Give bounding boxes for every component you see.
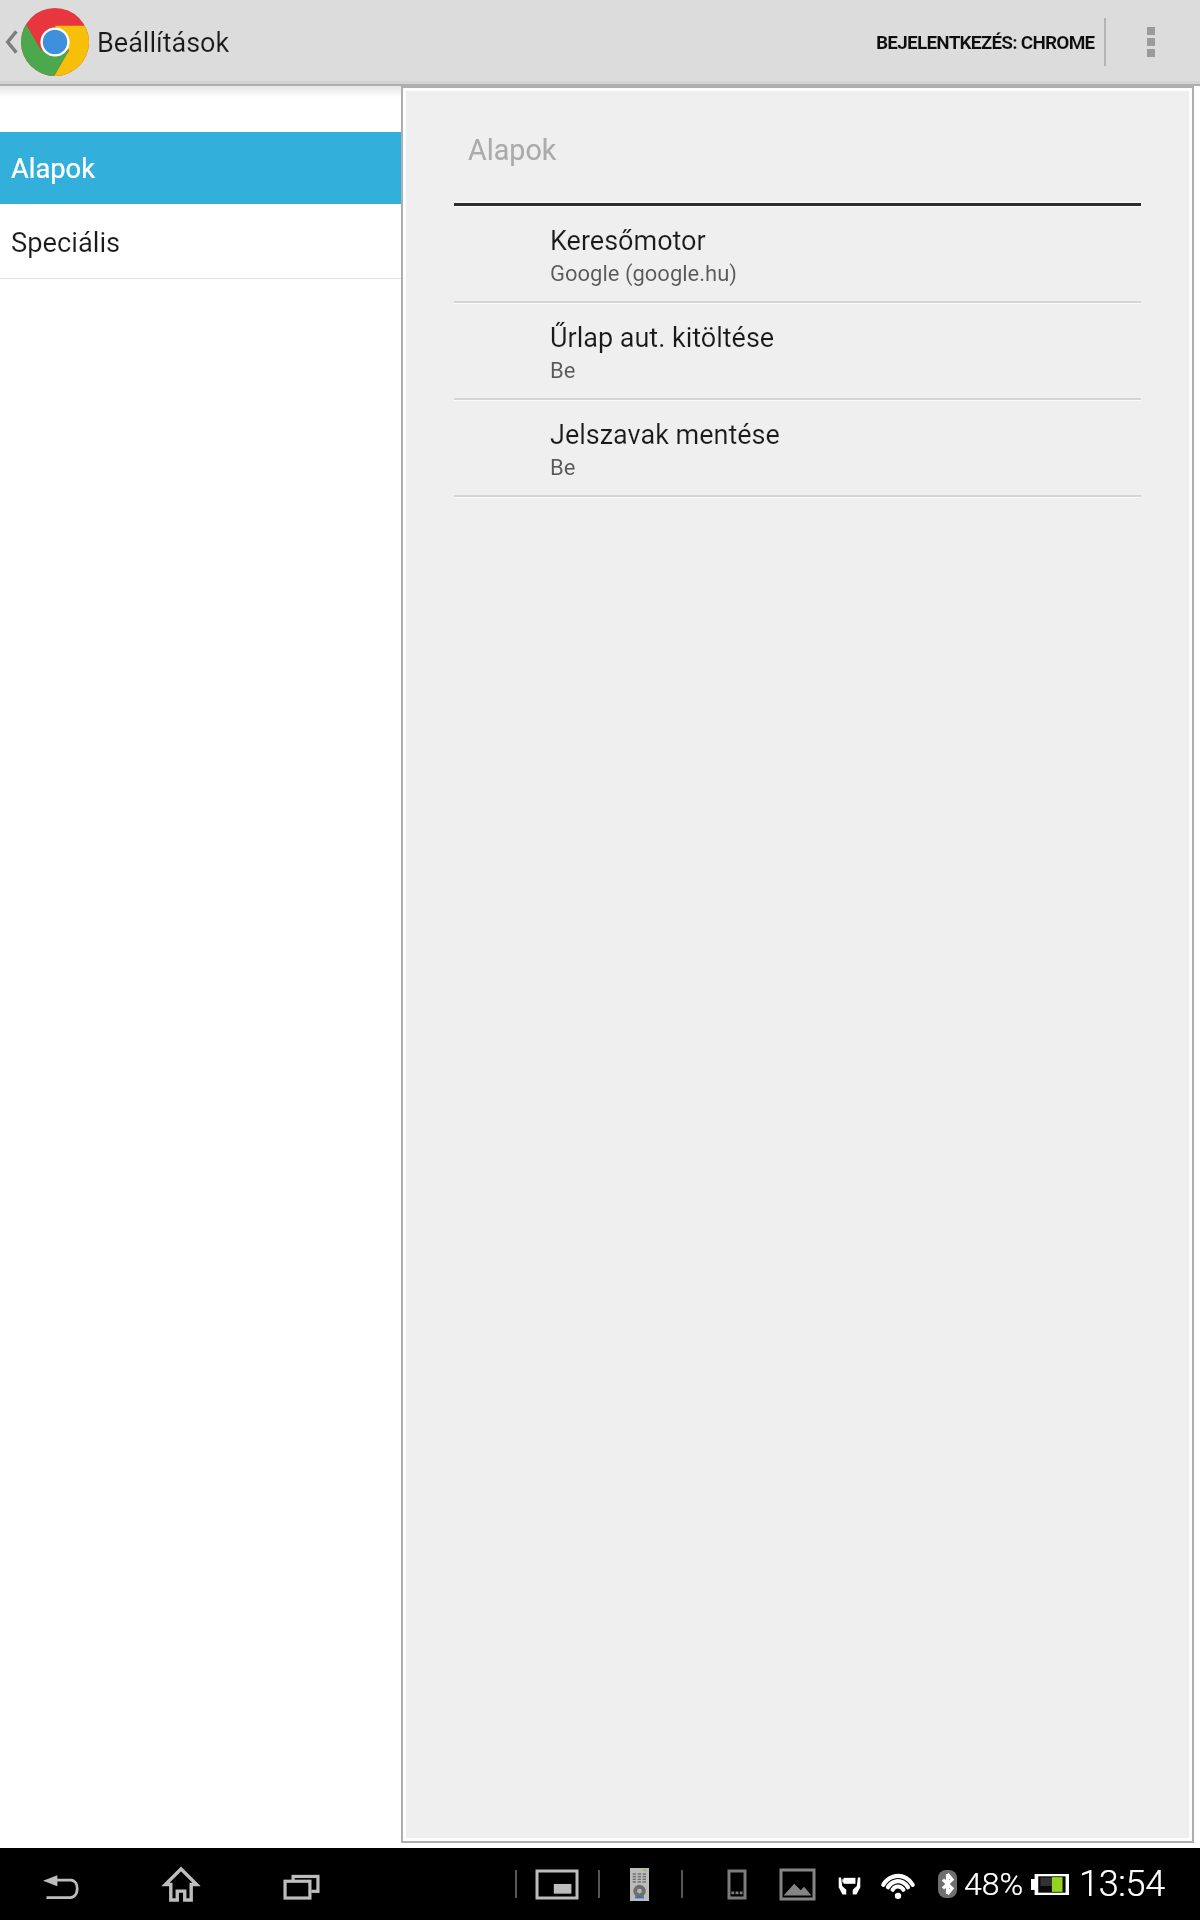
- staticText: Alapok: [11, 153, 96, 185]
- other: Back: [6, 31, 17, 53]
- staticText: Be: [550, 455, 576, 481]
- staticText: Google (google.hu): [550, 261, 737, 287]
- staticText: Speciális: [11, 227, 121, 259]
- button[interactable]: Űrlap aut. kitöltése: [406, 304, 1189, 401]
- staticText: BEJELENTKEZÉS: CHROME: [876, 31, 1095, 53]
- staticText: Keresőmotor: [550, 225, 706, 257]
- staticText: Be: [550, 358, 576, 384]
- staticText: Űrlap aut. kitöltése: [550, 322, 775, 354]
- button[interactable]: Keresőmotor: [406, 207, 1189, 304]
- button[interactable]: Speciális: [0, 204, 401, 276]
- button[interactable]: Alapok: [0, 132, 401, 204]
- staticText: 48%: [964, 1865, 1024, 1903]
- staticText: Beállítások: [97, 27, 230, 59]
- button[interactable]: BEJELENTKEZÉS: CHROME: [876, 0, 1095, 83]
- staticText: Jelszavak mentése: [550, 419, 780, 451]
- button[interactable]: Back: [0, 0, 230, 83]
- button[interactable]: More options: [1106, 1, 1196, 82]
- staticText: Alapok: [468, 133, 557, 167]
- button[interactable]: Back: [0, 1848, 121, 1920]
- button[interactable]: Recents: [241, 1848, 361, 1920]
- staticText: 13:54: [1079, 1863, 1165, 1905]
- button[interactable]: Jelszavak mentése: [406, 401, 1189, 498]
- button[interactable]: Home: [121, 1848, 241, 1920]
